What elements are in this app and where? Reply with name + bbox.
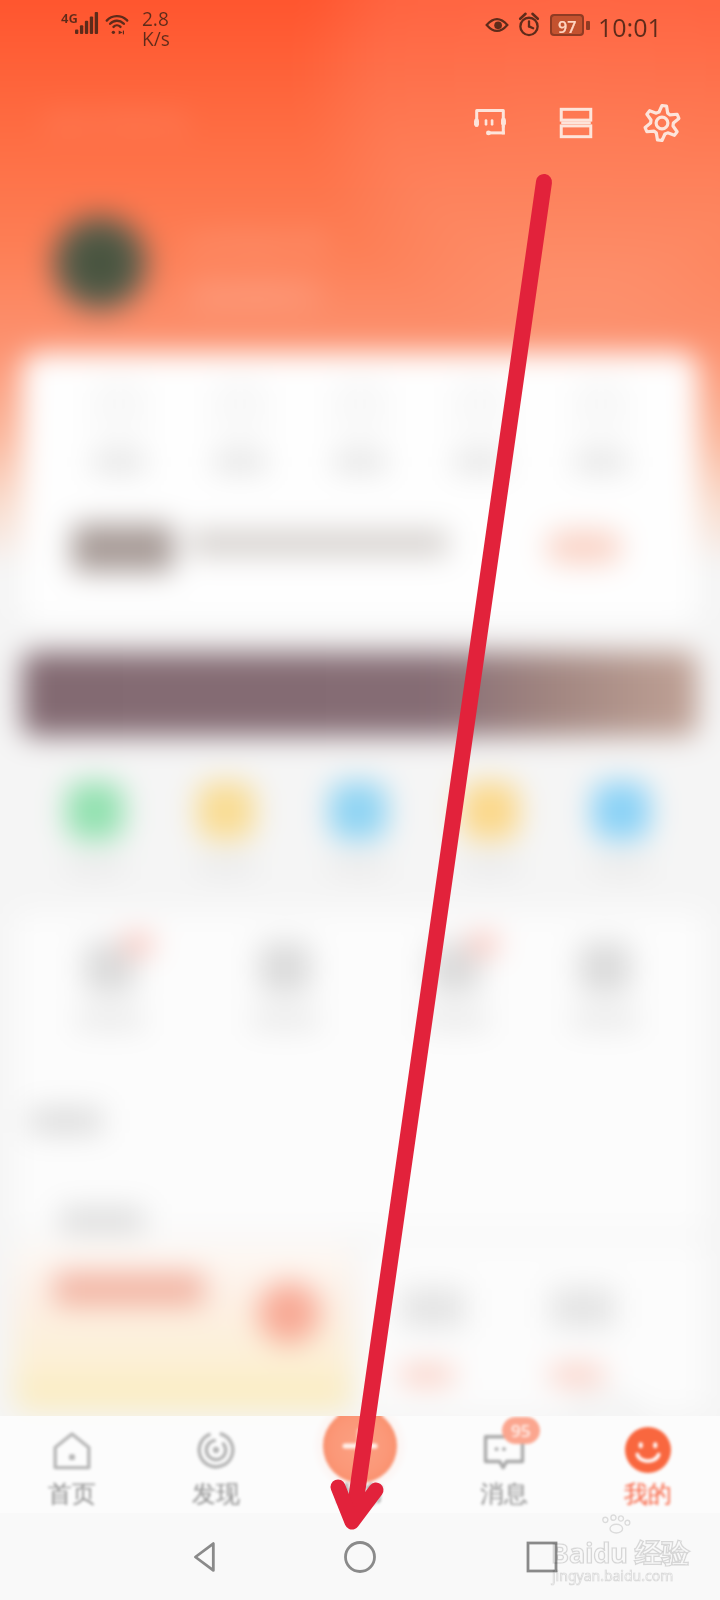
button[interactable]: Layout view (552, 99, 600, 147)
button[interactable] (59, 782, 131, 874)
button[interactable]: 发现 (144, 1416, 288, 1513)
button[interactable]: Recents (512, 1527, 572, 1587)
staticText: 95 (511, 1419, 531, 1442)
button[interactable] (14, 1242, 353, 1410)
button[interactable]: 首页 (0, 1416, 144, 1513)
staticText: 发现 (192, 1479, 240, 1509)
staticText: K/s (142, 26, 170, 52)
button[interactable]: Back (175, 1527, 235, 1587)
button[interactable] (585, 782, 657, 874)
button[interactable] (70, 942, 150, 1028)
staticText: 10:01 (598, 10, 662, 44)
button[interactable]: 我的 (576, 1416, 720, 1513)
button[interactable]: Customer service (466, 99, 514, 147)
staticText: 我的 (624, 1479, 672, 1509)
button[interactable] (574, 382, 628, 472)
staticText: 97 (558, 16, 577, 34)
button[interactable] (415, 942, 495, 1028)
button[interactable]: 发布 (288, 1416, 432, 1513)
button[interactable] (333, 382, 387, 472)
button[interactable] (453, 382, 507, 472)
button[interactable] (190, 782, 262, 874)
button[interactable] (322, 782, 394, 874)
staticText: 首页 (48, 1479, 96, 1509)
button[interactable]: Settings (638, 99, 686, 147)
button[interactable] (565, 942, 645, 1028)
button[interactable]: Home (330, 1527, 390, 1587)
button[interactable] (92, 382, 146, 472)
button[interactable]: 95 (432, 1416, 576, 1513)
button[interactable] (367, 1242, 706, 1410)
staticText: 发布 (336, 1479, 384, 1509)
button[interactable] (213, 382, 267, 472)
staticText: Baidu 经验 (551, 1534, 689, 1571)
button[interactable] (22, 652, 698, 736)
button[interactable] (454, 782, 526, 874)
staticText: 4G (61, 9, 78, 27)
button[interactable]: Avatar (52, 215, 148, 311)
staticText: jingyan.baidu.com (552, 1566, 674, 1585)
button[interactable] (245, 942, 325, 1028)
staticText: 2.8 (142, 6, 169, 32)
staticText: 消息 (480, 1479, 528, 1509)
button[interactable] (546, 530, 622, 564)
